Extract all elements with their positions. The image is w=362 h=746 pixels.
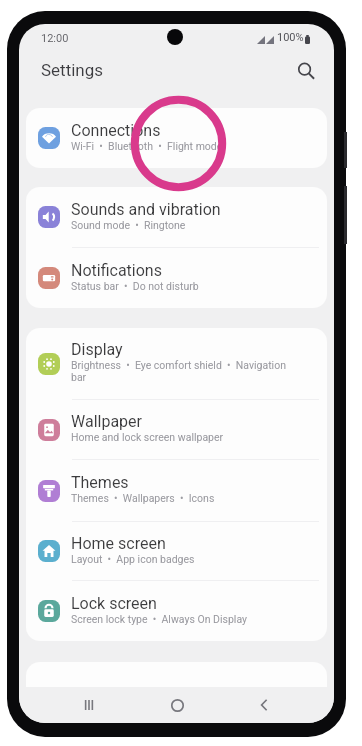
staticText: Lock screen [71, 594, 157, 613]
staticText: Connections [71, 121, 161, 140]
staticText: Sounds and vibration [71, 200, 221, 219]
staticText: Layout • App icon badges [71, 553, 195, 565]
button[interactable]: Wallpaper [26, 400, 327, 459]
staticText: 12:00 [41, 32, 69, 45]
button[interactable]: Sounds and vibration [26, 187, 327, 247]
staticText: Themes • Wallpapers • Icons [71, 492, 215, 504]
staticText: Wallpaper [71, 412, 142, 431]
button[interactable]: Recent apps [72, 688, 106, 722]
button[interactable]: Home screen [26, 522, 327, 580]
staticText: Display [71, 340, 123, 359]
staticText: Brightness • Eye comfort shield • Naviga… [71, 359, 302, 383]
staticText: Home screen [71, 534, 166, 553]
staticText: 100% [277, 31, 304, 44]
button[interactable]: Connections [26, 108, 327, 168]
staticText: Sound mode • Ringtone [71, 219, 186, 231]
button[interactable]: Display [26, 328, 327, 399]
button[interactable]: Themes [26, 460, 327, 521]
staticText: Notifications [71, 261, 162, 280]
staticText: Screen lock type • Always On Display [71, 613, 247, 625]
staticText: Themes [71, 473, 129, 492]
button[interactable]: Lock screen [26, 581, 327, 641]
button[interactable]: Home [160, 688, 194, 722]
button[interactable]: Back [247, 688, 281, 722]
staticText: Home and lock screen wallpaper [71, 431, 224, 443]
button[interactable]: Notifications [26, 248, 327, 308]
button[interactable]: Search [291, 56, 321, 86]
staticText: Status bar • Do not disturb [71, 280, 199, 292]
staticText: Settings [41, 60, 104, 80]
staticText: Wi-Fi • Bluetooth • Flight mode [71, 140, 223, 152]
